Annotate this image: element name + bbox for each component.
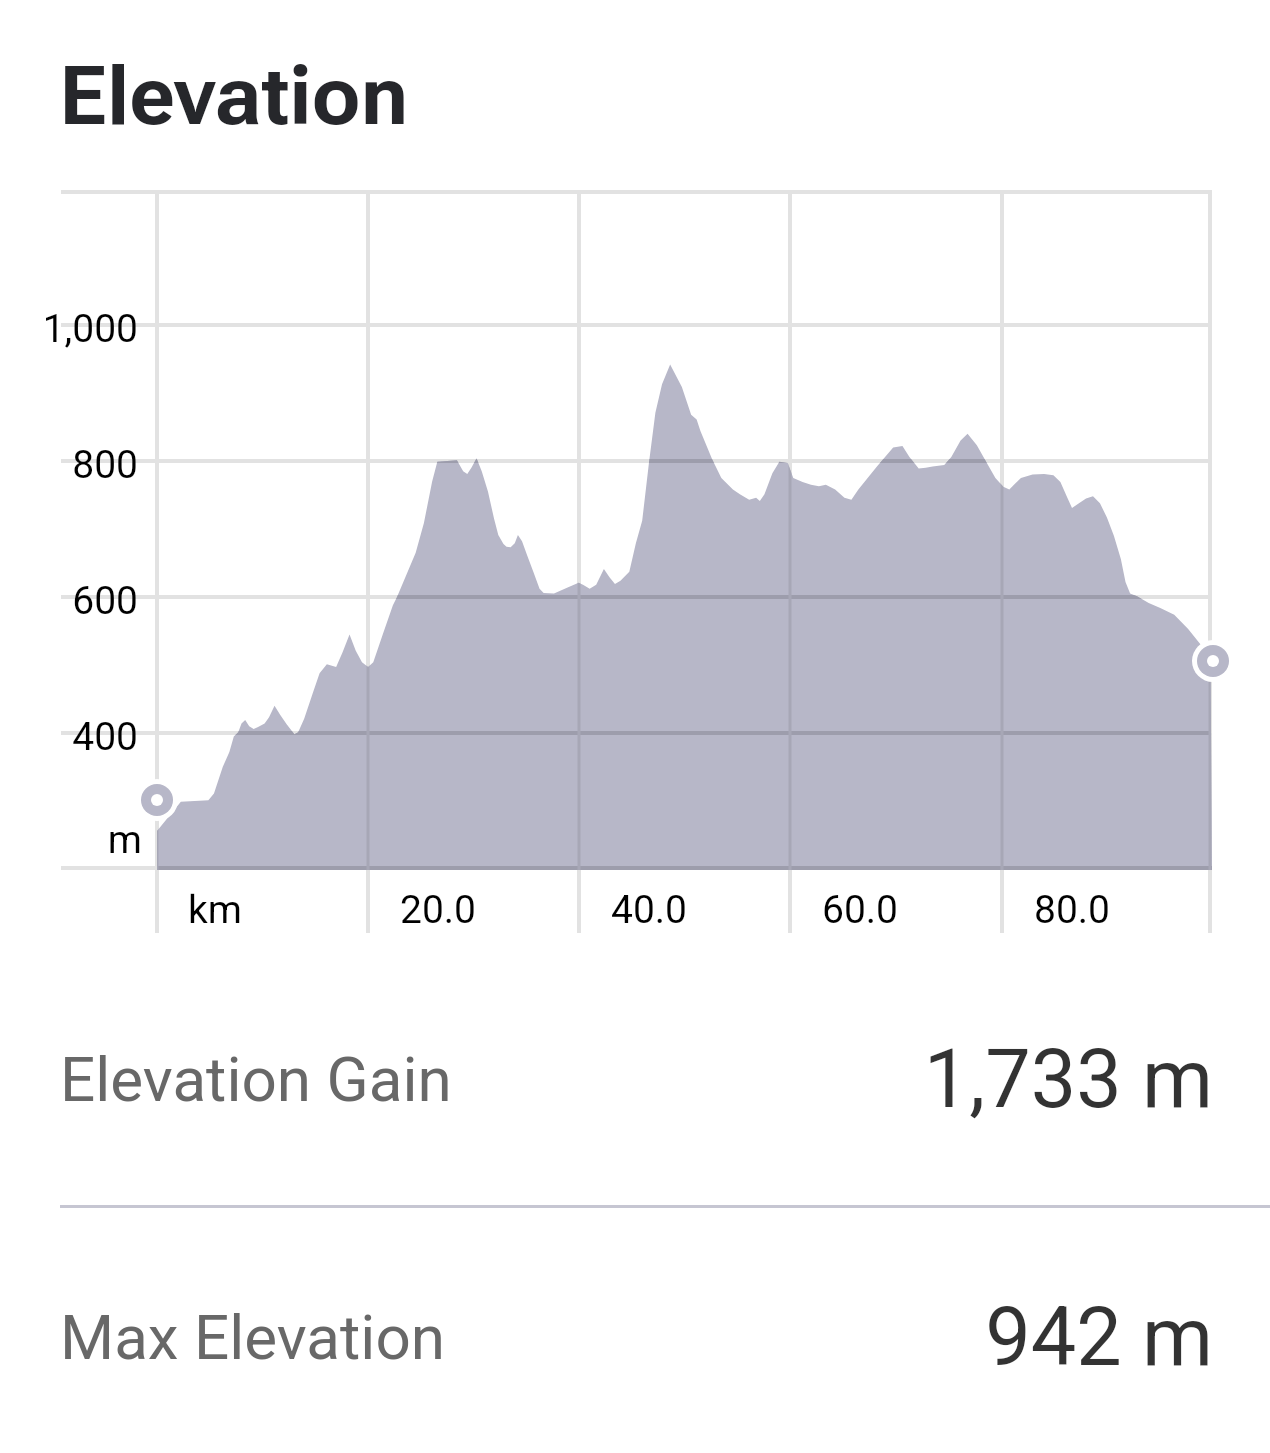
staticText: 60.0 [710,887,1010,947]
staticText: Elevation [59,49,579,179]
staticText: 800 [0,442,138,502]
button[interactable]: Elevation profile chart [60,180,1215,940]
staticText: km [65,887,365,947]
button[interactable]: Elevation Gain [0,978,1270,1178]
staticText: 1,733 m [413,1032,1213,1142]
staticText: 600 [0,578,138,638]
staticText: Max Elevation [60,1301,760,1385]
staticText: 400 [0,714,138,774]
staticText: 80.0 [922,887,1222,947]
staticText: 20.0 [288,887,588,947]
staticText: m [0,817,142,877]
staticText: Elevation Gain [60,1043,760,1127]
staticText: 942 m [413,1290,1213,1400]
staticText: 40.0 [499,887,799,947]
staticText: 1,000 [0,306,138,366]
button[interactable]: Max Elevation [0,1236,1270,1436]
